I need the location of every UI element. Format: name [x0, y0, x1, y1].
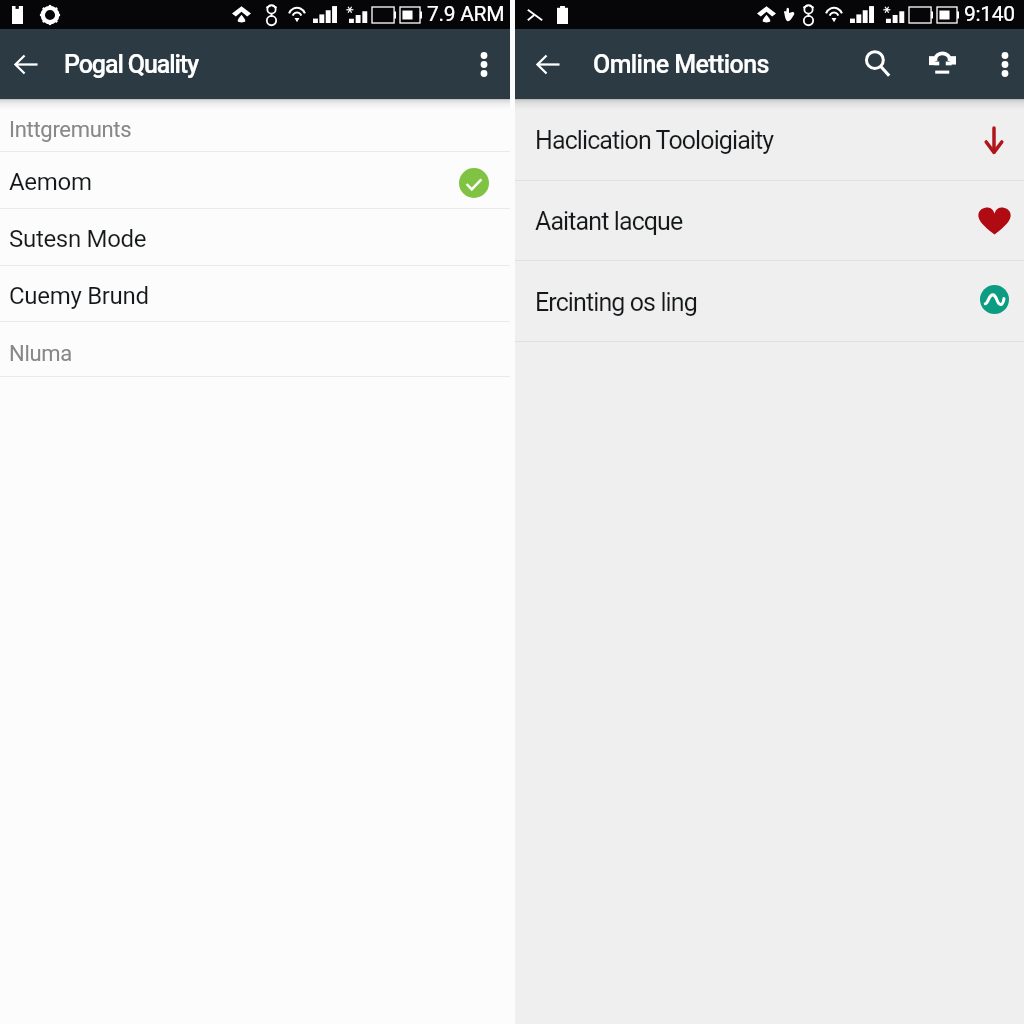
staticText: Cuemy Brund — [9, 282, 149, 310]
staticText: Omline Mettions — [593, 50, 769, 79]
button[interactable]: Haclication Tooloigiaity — [515, 99, 1024, 181]
staticText: Ercinting os ling — [535, 288, 697, 317]
button[interactable]: More options — [986, 29, 1024, 99]
button[interactable]: Search — [856, 29, 899, 99]
button[interactable]: Cuemy Brund — [0, 266, 510, 322]
staticText: Aaitant lacque — [535, 207, 683, 236]
staticText: 9:140 — [964, 2, 1015, 27]
button[interactable]: More options — [458, 29, 510, 99]
staticText: Pogal Quality — [64, 50, 199, 79]
button[interactable]: Video call — [899, 29, 986, 99]
button[interactable]: Nluma — [0, 322, 510, 377]
button[interactable]: Inttgremunts — [0, 99, 510, 152]
staticText: Haclication Tooloigiaity — [535, 126, 774, 155]
button[interactable]: Sutesn Mode — [0, 209, 510, 266]
button[interactable]: Navigate up — [0, 29, 52, 99]
button[interactable]: Ercinting os ling — [515, 261, 1024, 342]
button[interactable]: Aaitant lacque — [515, 181, 1024, 261]
staticText: Aemom — [9, 168, 92, 196]
staticText: Nluma — [9, 341, 72, 367]
staticText: Sutesn Mode — [9, 225, 147, 253]
staticText: 7.9 ARM — [427, 2, 505, 27]
button[interactable]: Navigate up — [515, 29, 581, 99]
button[interactable]: Aemom — [0, 152, 510, 209]
staticText: Inttgremunts — [9, 117, 132, 143]
